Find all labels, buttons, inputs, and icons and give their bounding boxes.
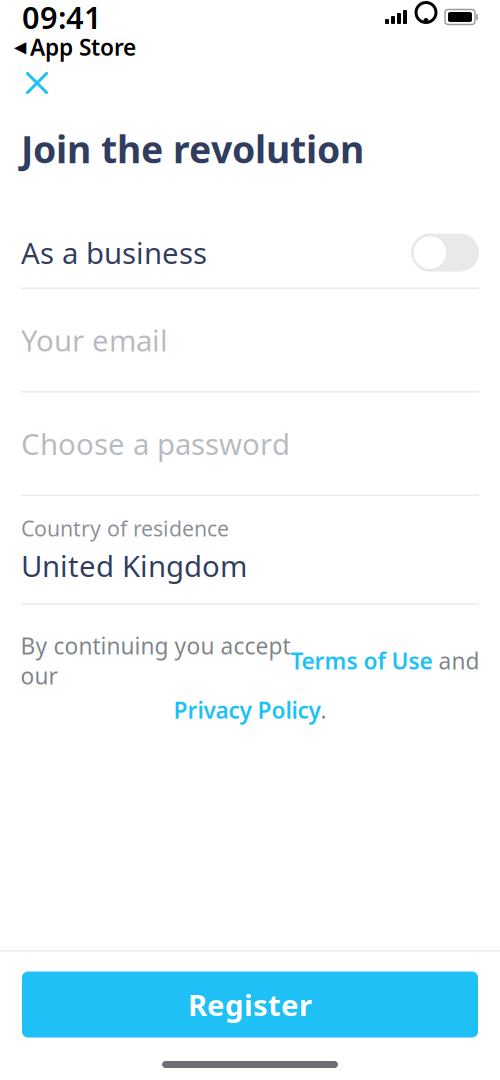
staticText: and <box>432 646 479 676</box>
button[interactable]: Your email <box>0 289 500 391</box>
staticText: Country of residence <box>21 514 229 542</box>
staticText: Register <box>188 985 312 1024</box>
staticText: Your email <box>21 321 168 360</box>
button[interactable]: Privacy Policy <box>173 695 320 725</box>
staticText: Choose a password <box>21 424 290 463</box>
staticText: . <box>320 695 326 725</box>
button[interactable]: Terms of Use <box>290 646 432 676</box>
staticText: Join the revolution <box>21 124 364 174</box>
button[interactable]: As a business <box>0 218 500 288</box>
button[interactable]: Country of residence <box>0 496 500 603</box>
staticText: United Kingdom <box>21 546 247 585</box>
staticText: 09:41 <box>22 0 102 37</box>
button[interactable]: ◀ <box>10 30 140 64</box>
staticText: App Store <box>30 32 136 62</box>
staticText: Privacy Policy <box>173 695 320 725</box>
staticText: ◀ <box>14 38 26 56</box>
button[interactable]: Choose a password <box>0 393 500 495</box>
staticText: Terms of Use <box>290 646 432 676</box>
staticText: By continuing you accept our <box>20 631 290 691</box>
button[interactable]: Close <box>15 61 59 105</box>
button[interactable]: Register <box>22 971 478 1037</box>
staticText: As a business <box>21 233 207 272</box>
